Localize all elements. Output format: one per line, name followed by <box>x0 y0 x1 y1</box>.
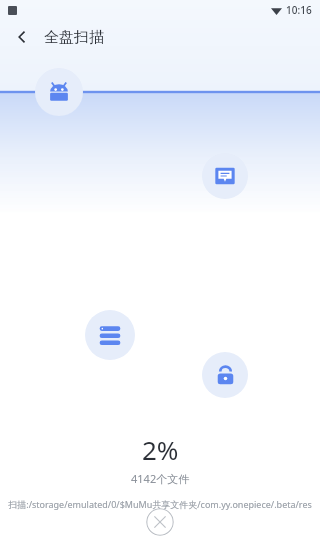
staticText: 10:16 <box>286 3 312 17</box>
staticText: 全盘扫描 <box>44 28 104 47</box>
button[interactable]: Back <box>6 21 38 53</box>
button[interactable]: Android app <box>35 68 83 116</box>
button[interactable]: Files <box>85 310 135 360</box>
button[interactable]: Privacy <box>202 352 248 398</box>
button[interactable]: Cancel scan <box>146 508 174 536</box>
staticText: 扫描:/storage/emulated/0/$MuMu共享文件夹/com.yy… <box>8 498 312 510</box>
staticText: 4142个文件 <box>131 471 190 486</box>
button[interactable]: Messages <box>202 153 248 199</box>
staticText: 2% <box>142 432 179 467</box>
